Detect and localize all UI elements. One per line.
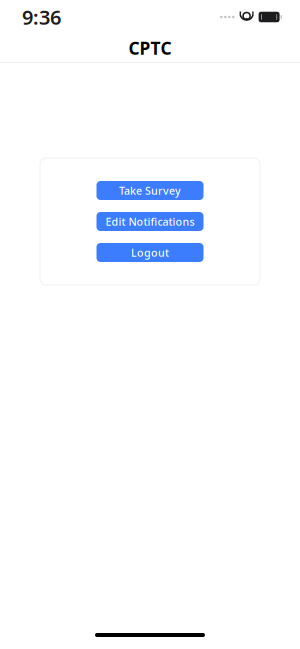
staticText: Edit Notifications <box>105 214 194 229</box>
button[interactable]: Logout <box>96 243 203 262</box>
staticText: 9:36 <box>22 4 61 30</box>
staticText: Logout <box>131 245 169 260</box>
staticText: CPTC <box>128 36 171 59</box>
button[interactable]: Take Survey <box>96 181 203 200</box>
staticText: Take Survey <box>119 183 181 198</box>
button[interactable]: Edit Notifications <box>96 212 203 231</box>
